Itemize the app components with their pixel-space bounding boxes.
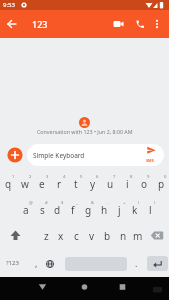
button[interactable]	[133, 17, 147, 31]
staticText: 8	[130, 174, 133, 180]
button[interactable]: d	[43, 203, 71, 217]
staticText: w	[21, 177, 29, 191]
staticText: o	[141, 177, 148, 191]
staticText: _	[76, 200, 78, 206]
staticText: t	[74, 177, 78, 191]
staticText: -	[107, 200, 109, 206]
staticText: q	[5, 177, 12, 191]
staticText: 3	[46, 174, 49, 180]
staticText: @	[29, 200, 33, 206]
staticText: i	[126, 177, 129, 191]
button[interactable]: g	[74, 203, 102, 217]
button[interactable]: m	[124, 229, 152, 243]
staticText: 2	[29, 174, 32, 180]
button[interactable]: u	[96, 177, 124, 191]
button[interactable]: o	[130, 177, 158, 191]
button[interactable]	[43, 257, 57, 271]
staticText: Conversation with 123 • Jun 2, 8:00 AM	[37, 128, 133, 135]
staticText: .	[135, 257, 138, 269]
button[interactable]	[141, 143, 161, 165]
button[interactable]: i	[113, 177, 141, 191]
staticText: ?123	[6, 259, 19, 267]
button[interactable]: r	[45, 177, 73, 191]
staticText: m	[133, 229, 143, 243]
staticText: j	[118, 203, 121, 217]
staticText: $	[61, 200, 64, 206]
staticText: +	[123, 200, 126, 206]
button[interactable]: k	[121, 203, 149, 217]
button[interactable]: e	[28, 177, 56, 191]
staticText: f	[71, 203, 75, 217]
staticText: #	[45, 200, 48, 206]
staticText: z	[44, 229, 49, 243]
staticText: e	[39, 177, 45, 191]
staticText: c	[74, 229, 79, 243]
staticText: 0	[164, 174, 167, 180]
button[interactable]: w	[11, 177, 39, 191]
button[interactable]	[115, 280, 130, 294]
staticText: 9:53	[3, 1, 15, 9]
staticText: n	[120, 229, 127, 243]
staticText: l	[149, 203, 152, 217]
staticText: SMS	[146, 158, 154, 163]
button[interactable]	[27, 144, 164, 166]
button[interactable]: y	[79, 177, 107, 191]
button[interactable]: b	[93, 229, 121, 243]
button[interactable]	[35, 280, 50, 294]
staticText: r	[57, 177, 62, 191]
staticText: a	[23, 203, 29, 217]
button[interactable]: .	[122, 256, 150, 270]
button[interactable]: t	[62, 177, 90, 191]
staticText: d	[54, 203, 61, 217]
staticText: )	[154, 200, 156, 206]
button[interactable]	[150, 17, 164, 31]
staticText: p	[158, 177, 165, 191]
button[interactable]: v	[78, 229, 106, 243]
button[interactable]: n	[109, 229, 137, 243]
button[interactable]: ?123	[0, 256, 26, 270]
staticText: 123	[32, 18, 48, 30]
staticText: y	[90, 177, 96, 191]
button[interactable]: ,	[22, 256, 50, 270]
button[interactable]: q	[0, 177, 22, 191]
button[interactable]: f	[59, 203, 87, 217]
button[interactable]	[5, 17, 19, 31]
button[interactable]: x	[47, 229, 75, 243]
staticText: 4	[63, 174, 66, 180]
staticText: 5	[80, 174, 83, 180]
staticText: h	[101, 203, 108, 217]
staticText: k	[132, 203, 138, 217]
staticText: ,	[35, 257, 38, 269]
staticText: g	[85, 203, 92, 217]
button[interactable]	[77, 115, 92, 130]
button[interactable]: s	[28, 203, 56, 217]
button[interactable]: l	[136, 203, 164, 217]
button[interactable]	[77, 280, 92, 294]
button[interactable]	[111, 17, 125, 31]
button[interactable]: h	[90, 203, 118, 217]
staticText: x	[58, 229, 64, 243]
staticText: u	[107, 177, 114, 191]
button[interactable]	[6, 146, 24, 164]
staticText: 7	[113, 174, 116, 180]
staticText: (	[138, 200, 140, 206]
staticText: 1	[12, 174, 15, 180]
staticText: v	[89, 229, 95, 243]
staticText: s	[40, 203, 45, 217]
button[interactable]	[8, 228, 23, 243]
staticText: 6	[96, 174, 99, 180]
staticText: &	[91, 200, 95, 206]
button[interactable]: j	[105, 203, 133, 217]
button[interactable]	[147, 256, 168, 271]
button[interactable]: z	[32, 229, 60, 243]
staticText: 9	[147, 174, 150, 180]
button[interactable]: p	[147, 177, 169, 191]
button[interactable]: c	[62, 229, 90, 243]
button[interactable]	[149, 228, 165, 243]
staticText: Simple Keyboard	[33, 151, 85, 160]
staticText: b	[104, 229, 111, 243]
button[interactable]: a	[12, 203, 40, 217]
